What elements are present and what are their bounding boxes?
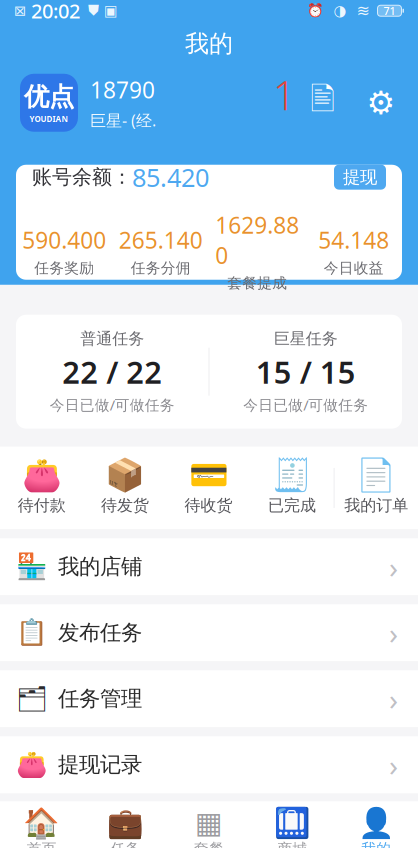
staticText: 71 <box>383 4 395 18</box>
staticText: 已完成 <box>268 496 316 515</box>
staticText: › <box>389 613 398 652</box>
staticText: 我的订单 <box>344 496 408 515</box>
staticText: YOUDIAN <box>29 113 68 124</box>
staticText: 任务 <box>110 840 140 848</box>
staticText: 👛 <box>22 456 62 493</box>
staticText: 套餐提成 <box>227 274 287 292</box>
button[interactable]: 👛 <box>0 447 83 529</box>
button[interactable]: 🏪 <box>0 538 418 595</box>
staticText: 20:02 <box>26 0 80 24</box>
staticText: 我的店铺 <box>58 554 142 580</box>
staticText: 提现记录 <box>58 752 142 778</box>
staticText: 👛 <box>16 750 48 779</box>
button[interactable]: 编辑资料 <box>306 86 340 120</box>
staticText: 15 / 15 <box>256 351 356 392</box>
button[interactable]: 👛 <box>0 736 418 793</box>
staticText: 🏪 <box>16 552 48 581</box>
staticText: ⊠ <box>14 2 26 19</box>
button[interactable]: 提现 <box>334 165 386 190</box>
staticText: › <box>389 547 398 586</box>
staticText: ≋ <box>346 2 369 20</box>
staticText: 商城 <box>278 840 308 848</box>
staticText: 590.400 <box>22 225 106 255</box>
staticText: 📦 <box>105 456 145 493</box>
staticText: ▦ <box>195 806 223 839</box>
button[interactable]: 📋 <box>0 604 418 661</box>
staticText: 巨星- (经. <box>90 110 156 131</box>
staticText: 🧾 <box>272 456 312 493</box>
button[interactable]: ▦ <box>167 803 251 848</box>
button[interactable]: 🧾 <box>250 447 334 529</box>
button[interactable]: 💼 <box>84 803 167 848</box>
staticText: 发布任务 <box>58 620 142 646</box>
staticText: 18790 <box>90 75 155 105</box>
staticText: › <box>389 745 398 784</box>
staticText: 任务分佣 <box>131 259 191 277</box>
staticText: 优点 <box>24 81 74 112</box>
staticText: 54.148 <box>318 225 389 255</box>
button[interactable]: 📄 <box>335 447 418 529</box>
staticText: 今日收益 <box>324 259 384 277</box>
staticText: ⛊ <box>80 4 99 18</box>
button[interactable]: 💳 <box>167 447 250 529</box>
staticText: 待收货 <box>184 496 232 515</box>
staticText: 今日已做/可做任务 <box>243 395 368 415</box>
staticText: ▣ <box>99 2 118 19</box>
staticText: 📄 <box>356 456 396 493</box>
staticText: 我的 <box>361 840 391 848</box>
button[interactable]: 🛄 <box>251 803 334 848</box>
staticText: 📋 <box>16 618 48 647</box>
staticText: › <box>389 679 398 718</box>
button[interactable]: 设置 <box>364 86 398 120</box>
button[interactable]: 🏠 <box>0 803 84 848</box>
staticText: 👤 <box>358 806 395 839</box>
staticText: 我的 <box>185 29 233 58</box>
staticText: 待发货 <box>101 496 149 515</box>
staticText: 1 <box>273 68 296 121</box>
staticText: 85.420 <box>132 160 209 194</box>
staticText: 22 / 22 <box>62 351 162 392</box>
staticText: 待付款 <box>18 496 66 515</box>
staticText: 任务奖励 <box>34 259 94 277</box>
staticText: 🏠 <box>23 806 60 839</box>
staticText: 🖹 <box>310 77 335 128</box>
button[interactable]: 优点 <box>20 74 156 132</box>
staticText: ⏰ <box>306 3 323 18</box>
staticText: ⚙ <box>366 85 395 121</box>
staticText: ◑ <box>323 2 346 19</box>
staticText: 首页 <box>27 840 57 848</box>
staticText: 🛄 <box>274 806 311 839</box>
staticText: 265.140 <box>119 225 203 255</box>
staticText: 任务管理 <box>58 686 142 712</box>
button[interactable]: 👤 <box>334 803 418 848</box>
button[interactable]: 📦 <box>83 447 167 529</box>
staticText: 💼 <box>107 806 144 839</box>
staticText: 账号余额： <box>32 165 132 189</box>
staticText: 巨星任务 <box>274 329 338 348</box>
button[interactable]: 🗂 <box>0 670 418 727</box>
staticText: 💳 <box>188 456 228 493</box>
staticText: 套餐 <box>194 840 224 848</box>
staticText: 提现 <box>343 166 377 188</box>
staticText: 普通任务 <box>80 329 144 348</box>
staticText: 1629.880 <box>215 210 299 270</box>
staticText: 今日已做/可做任务 <box>50 395 175 415</box>
staticText: 🗂 <box>16 684 48 713</box>
